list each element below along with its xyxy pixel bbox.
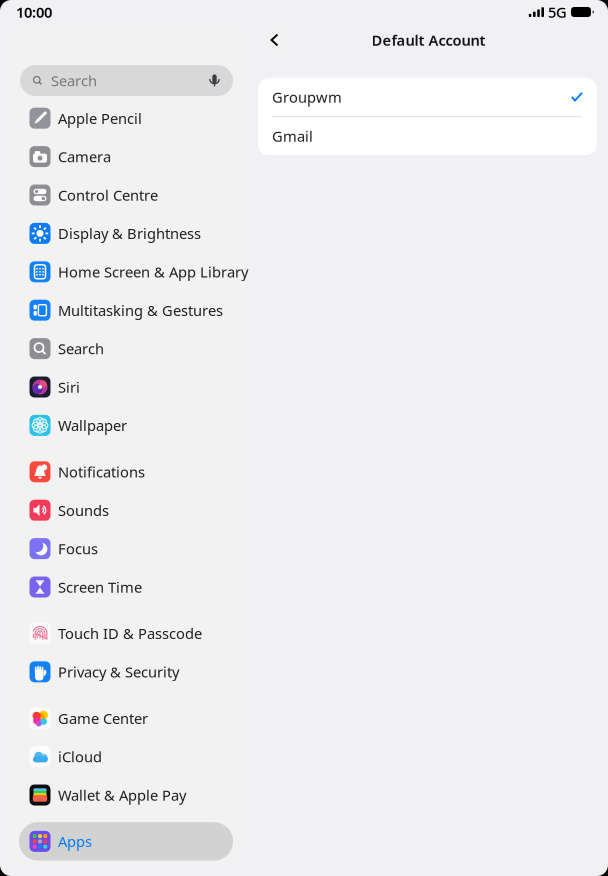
staticText: Groupwm: [272, 87, 342, 107]
staticText: Camera: [58, 147, 111, 166]
button[interactable]: Multitasking & Gestures: [9, 291, 245, 329]
staticText: Apple Pencil: [58, 108, 142, 128]
staticText: Wallpaper: [58, 416, 127, 435]
staticText: Sounds: [58, 500, 109, 520]
staticText: Game Center: [58, 708, 148, 728]
staticText: Wallet & Apple Pay: [58, 785, 186, 805]
button[interactable]: Focus: [9, 529, 245, 568]
button[interactable]: Game Center: [9, 699, 245, 737]
staticText: Focus: [58, 539, 98, 558]
staticText: Multitasking & Gestures: [58, 300, 223, 320]
button[interactable]: Notifications: [9, 453, 245, 491]
staticText: Screen Time: [58, 577, 142, 597]
button[interactable]: Camera: [9, 137, 245, 176]
button[interactable]: Groupwm: [258, 78, 597, 116]
button[interactable]: Sounds: [9, 491, 245, 529]
button[interactable]: Privacy & Security: [9, 653, 245, 691]
button[interactable]: Search: [9, 329, 245, 368]
button[interactable]: Control Centre: [9, 176, 245, 214]
button[interactable]: Back: [260, 24, 292, 56]
staticText: Display & Brightness: [58, 224, 201, 243]
staticText: 10:00: [16, 2, 52, 22]
staticText: Siri: [58, 377, 80, 397]
staticText: Default Account: [371, 30, 485, 50]
button[interactable]: Screen Time: [9, 568, 245, 606]
staticText: Control Centre: [58, 185, 158, 205]
button[interactable]: Display & Brightness: [9, 214, 245, 253]
staticText: Apps: [58, 832, 92, 851]
button[interactable]: Touch ID & Passcode: [9, 614, 245, 653]
button[interactable]: Siri: [9, 368, 245, 406]
staticText: iCloud: [58, 747, 102, 766]
button[interactable]: Home Screen & App Library: [9, 253, 245, 291]
staticText: Home Screen & App Library: [58, 262, 247, 282]
staticText: Notifications: [58, 462, 145, 482]
button[interactable]: Wallet & Apple Pay: [9, 776, 245, 814]
button[interactable]: iCloud: [9, 737, 245, 776]
button[interactable]: Apple Pencil: [9, 99, 245, 137]
staticText: Search: [51, 71, 97, 90]
staticText: Gmail: [272, 126, 313, 146]
button[interactable]: Apps: [9, 822, 245, 861]
staticText: Privacy & Security: [58, 662, 179, 682]
button[interactable]: Wallpaper: [9, 406, 245, 445]
staticText: 5G: [548, 2, 567, 22]
staticText: Touch ID & Passcode: [58, 624, 202, 643]
button[interactable]: Gmail: [258, 117, 597, 155]
staticText: Search: [58, 339, 104, 358]
